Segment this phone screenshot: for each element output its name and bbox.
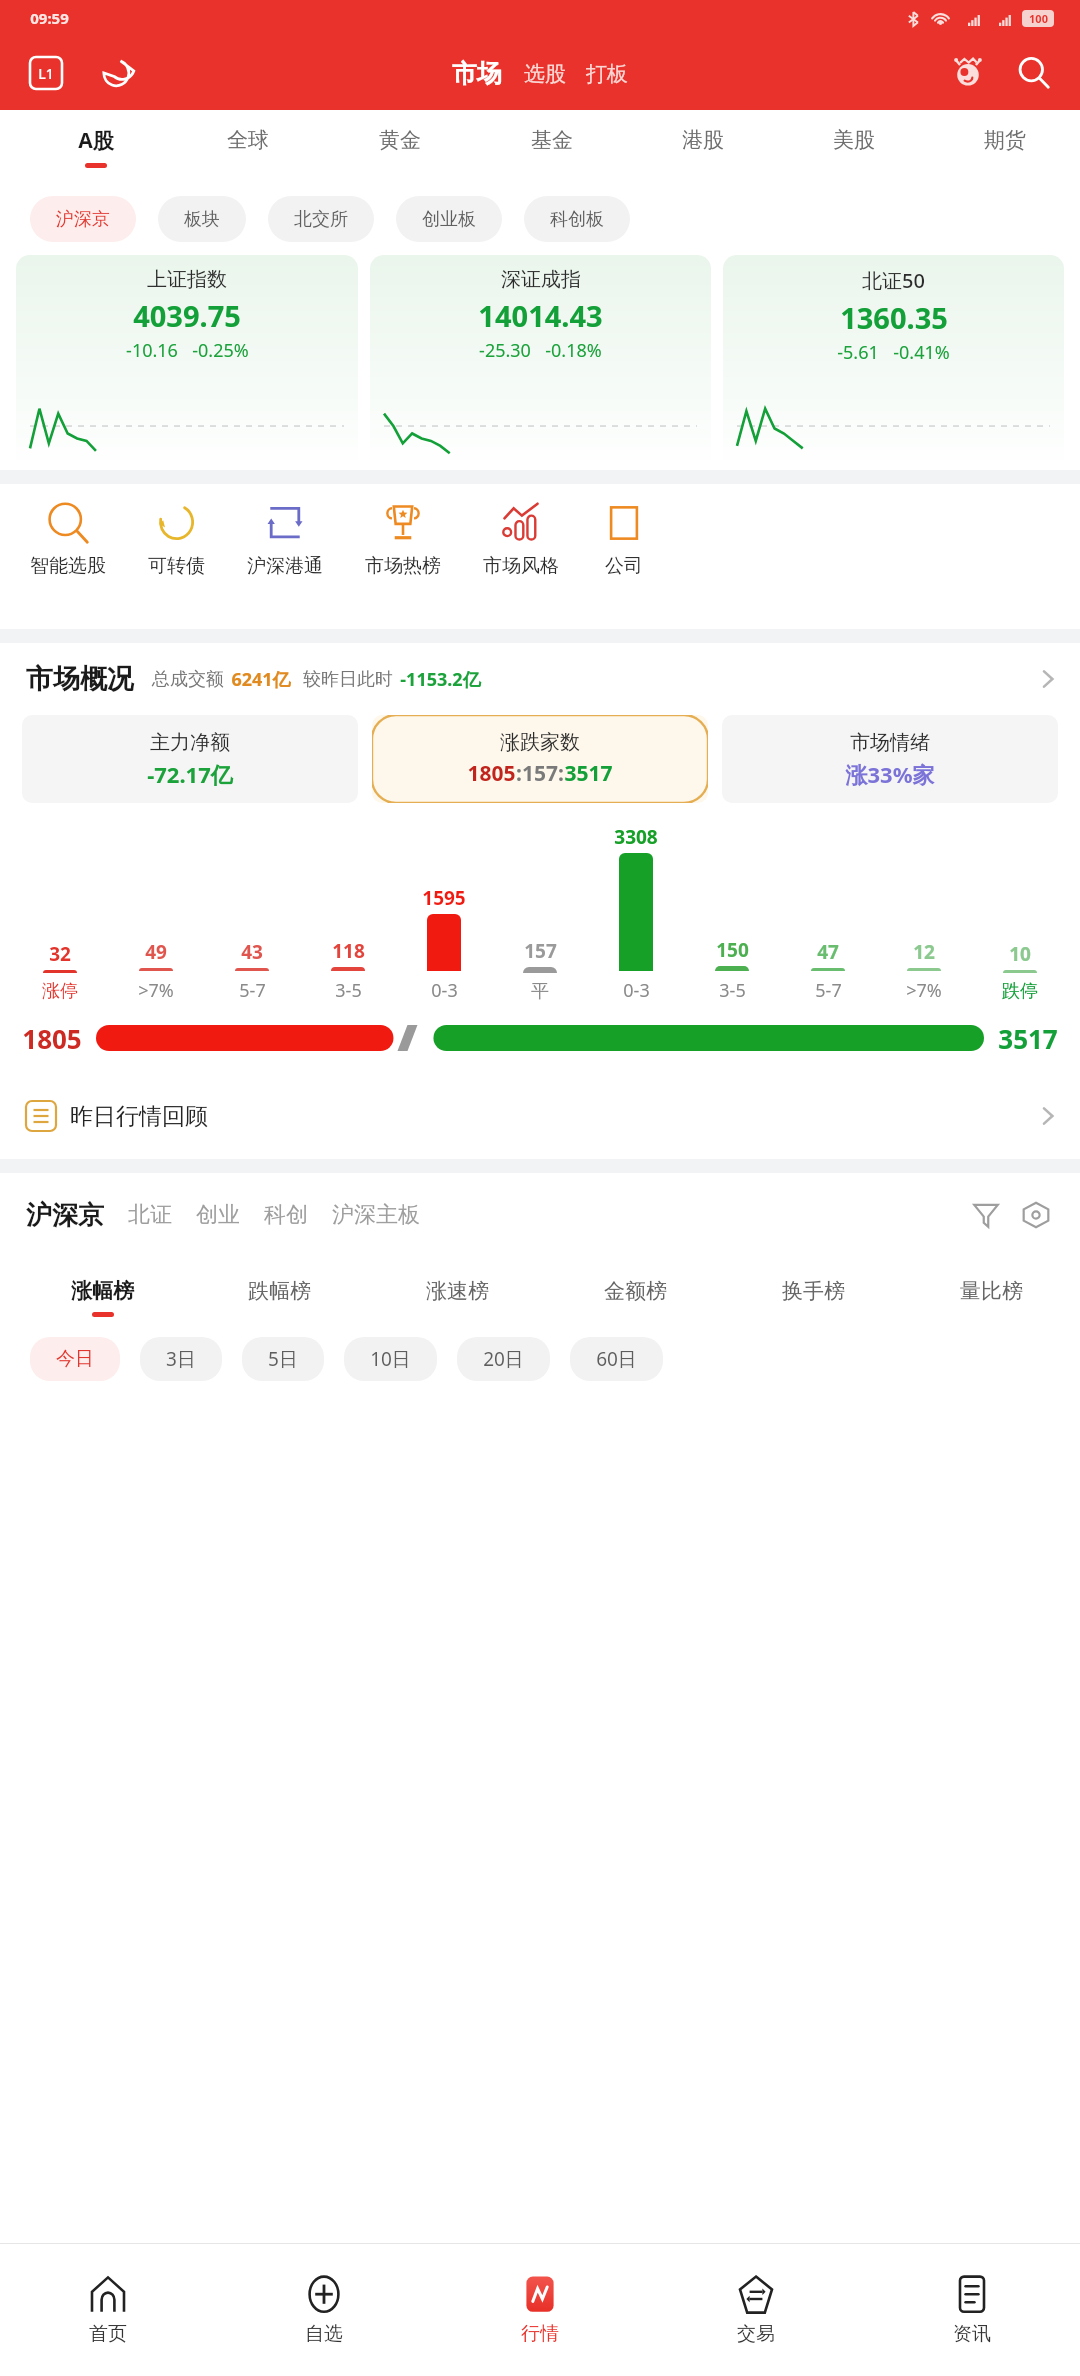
- staticText: 行情: [521, 2322, 559, 2346]
- staticText: 沪深主板: [332, 1201, 420, 1229]
- button[interactable]: 北交所: [268, 196, 374, 242]
- staticText: 北证50: [862, 267, 925, 294]
- button[interactable]: 主力净额: [22, 715, 358, 803]
- button[interactable]: 美股: [778, 110, 929, 183]
- button[interactable]: 创业板: [396, 196, 502, 242]
- staticText: 60日: [596, 1346, 637, 1372]
- staticText: 科创: [264, 1201, 308, 1229]
- button[interactable]: 期货: [929, 110, 1080, 183]
- button[interactable]: Filter: [964, 1193, 1008, 1237]
- staticText: 沪深京: [26, 1199, 104, 1232]
- staticText: 跌幅榜: [248, 1278, 311, 1304]
- button[interactable]: 涨幅榜: [14, 1257, 191, 1337]
- button[interactable]: Night mode: [94, 51, 138, 95]
- staticText: 3517: [998, 1021, 1058, 1056]
- button[interactable]: 创业: [196, 1201, 240, 1229]
- button[interactable]: 涨跌家数: [372, 715, 708, 803]
- button[interactable]: 市场情绪: [722, 715, 1058, 803]
- staticText: -0.18%: [545, 338, 602, 363]
- staticText: 打板: [586, 61, 628, 87]
- button[interactable]: L1 level: [24, 51, 68, 95]
- button[interactable]: 可转债: [148, 500, 205, 578]
- staticText: -72.17亿: [147, 759, 233, 789]
- staticText: 118: [332, 938, 365, 964]
- button[interactable]: 换手榜: [724, 1257, 902, 1337]
- button[interactable]: 沪深京: [30, 196, 136, 242]
- staticText: 较昨日此时: [303, 668, 393, 691]
- staticText: 157: [524, 938, 557, 964]
- staticText: :157:: [516, 759, 564, 788]
- button[interactable]: 3日: [140, 1337, 222, 1381]
- button[interactable]: 60日: [570, 1337, 663, 1381]
- staticText: 自选: [305, 2322, 343, 2346]
- button[interactable]: 黄金: [324, 110, 476, 183]
- button[interactable]: 北证50: [723, 255, 1064, 470]
- button[interactable]: 基金: [476, 110, 627, 183]
- button[interactable]: 资讯: [864, 2244, 1080, 2376]
- button[interactable]: 选股: [520, 59, 570, 89]
- button[interactable]: 市场概况: [0, 643, 1080, 715]
- button[interactable]: 上证指数: [16, 255, 358, 470]
- button[interactable]: 自选: [216, 2244, 432, 2376]
- button[interactable]: 科创: [264, 1201, 308, 1229]
- button[interactable]: 市场热榜: [365, 500, 441, 578]
- button[interactable]: 沪深京: [26, 1199, 104, 1232]
- button[interactable]: 20日: [457, 1337, 550, 1381]
- button[interactable]: Settings: [1014, 1193, 1058, 1237]
- button[interactable]: 今日: [30, 1337, 120, 1381]
- staticText: 1595: [422, 885, 466, 911]
- button[interactable]: 金额榜: [546, 1257, 724, 1337]
- staticText: 6241亿: [231, 667, 291, 692]
- button[interactable]: 量比榜: [902, 1257, 1080, 1337]
- button[interactable]: 跌幅榜: [191, 1257, 368, 1337]
- button[interactable]: 北证: [128, 1201, 172, 1229]
- button[interactable]: 沪深主板: [332, 1201, 420, 1229]
- button[interactable]: 交易: [648, 2244, 864, 2376]
- staticText: 可转债: [148, 554, 205, 578]
- staticText: 涨停: [42, 980, 78, 1003]
- staticText: 主力净额: [150, 730, 230, 755]
- staticText: 100: [1029, 11, 1048, 26]
- button[interactable]: 市场: [448, 58, 506, 89]
- staticText: 涨速榜: [426, 1278, 489, 1304]
- staticText: >7%: [906, 978, 942, 1003]
- button[interactable]: 昨日行情回顾: [0, 1073, 1080, 1159]
- staticText: 市场风格: [483, 554, 559, 578]
- staticText: 总成交额: [152, 668, 224, 691]
- staticText: 美股: [833, 127, 875, 153]
- button[interactable]: 沪深港通: [247, 500, 323, 578]
- button[interactable]: 科创板: [524, 196, 630, 242]
- button[interactable]: 10日: [344, 1337, 437, 1381]
- button[interactable]: 涨速榜: [368, 1257, 546, 1337]
- button[interactable]: A股: [20, 110, 172, 183]
- button[interactable]: Search: [1010, 49, 1058, 97]
- staticText: 3308: [614, 824, 658, 850]
- staticText: -10.16: [126, 338, 178, 363]
- button[interactable]: 市场风格: [483, 500, 559, 578]
- button[interactable]: 首页: [0, 2244, 216, 2376]
- button[interactable]: 行情: [432, 2244, 648, 2376]
- button[interactable]: 深证成指: [370, 255, 711, 470]
- staticText: 09:59: [30, 8, 69, 28]
- staticText: 43: [241, 939, 263, 965]
- staticText: 1805: [467, 759, 516, 788]
- staticText: 3日: [166, 1346, 196, 1372]
- staticText: 交易: [737, 2322, 775, 2346]
- staticText: 今日: [56, 1347, 94, 1371]
- button[interactable]: 智能选股: [30, 500, 106, 578]
- staticText: -25.30: [479, 338, 531, 363]
- staticText: -5.61: [837, 340, 879, 365]
- staticText: 首页: [89, 2322, 127, 2346]
- button[interactable]: 板块: [158, 196, 246, 242]
- button[interactable]: Assistant: [944, 49, 992, 97]
- button[interactable]: 打板: [582, 59, 632, 89]
- staticText: 12: [913, 939, 935, 965]
- staticText: 5-7: [815, 978, 842, 1003]
- button[interactable]: 5日: [242, 1337, 324, 1381]
- staticText: 5-7: [239, 978, 266, 1003]
- button[interactable]: 港股: [627, 110, 778, 183]
- button[interactable]: 公司: [601, 500, 647, 578]
- staticText: 港股: [682, 127, 724, 153]
- button[interactable]: 全球: [172, 110, 324, 183]
- staticText: 沪深京: [56, 208, 110, 231]
